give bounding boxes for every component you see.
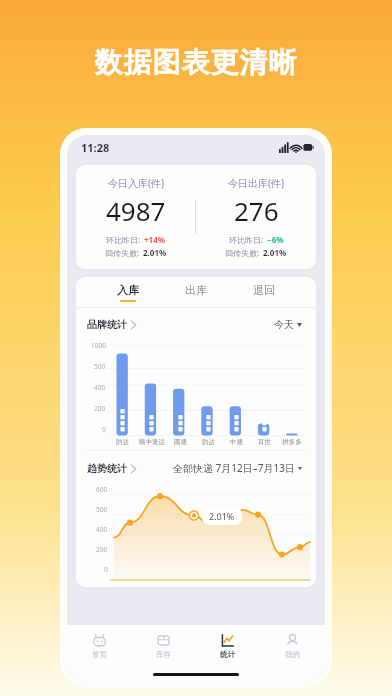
staticText: 500 bbox=[94, 362, 106, 371]
staticText: 11:28 bbox=[81, 140, 110, 155]
staticText: 统计 bbox=[220, 650, 235, 659]
staticText: 出库 bbox=[185, 283, 207, 297]
staticText: 4987 bbox=[106, 193, 166, 228]
staticText: −6% bbox=[267, 234, 284, 245]
staticText: 韵达 bbox=[116, 438, 129, 446]
staticText: 库存 bbox=[156, 650, 171, 659]
staticText: +14% bbox=[144, 234, 165, 245]
button[interactable]: 趋势统计 bbox=[87, 462, 136, 475]
staticText: 全部快递 7月12日–7月13日 bbox=[173, 461, 295, 475]
button[interactable]: 退回 bbox=[247, 280, 281, 305]
staticText: 0 bbox=[102, 425, 106, 434]
button[interactable]: 今天 bbox=[271, 315, 305, 334]
button[interactable]: 入库 bbox=[111, 280, 145, 305]
staticText: 趋势统计 bbox=[87, 462, 127, 475]
staticText: 2.01% bbox=[143, 247, 167, 258]
staticText: 200 bbox=[96, 545, 108, 554]
staticText: 数据图表更清晰 bbox=[0, 45, 392, 80]
staticText: 600 bbox=[96, 485, 108, 494]
button[interactable]: 我的 bbox=[260, 625, 325, 667]
button[interactable]: 库存 bbox=[131, 625, 195, 667]
staticText: 退回 bbox=[253, 283, 275, 297]
staticText: 中通 bbox=[230, 438, 243, 446]
button[interactable]: 出库 bbox=[179, 280, 213, 305]
staticText: 今日出库(件) bbox=[228, 176, 284, 190]
staticText: 品牌统计 bbox=[87, 318, 127, 331]
staticText: 500 bbox=[96, 505, 108, 514]
staticText: 200 bbox=[94, 404, 106, 413]
staticText: 今天 bbox=[274, 318, 294, 331]
staticText: 入库 bbox=[117, 283, 139, 297]
staticText: 2.01% bbox=[209, 510, 235, 522]
button[interactable]: 全部快递 7月12日–7月13日 bbox=[170, 458, 305, 478]
button[interactable]: 统计 bbox=[195, 625, 260, 667]
staticText: 我的 bbox=[285, 650, 300, 659]
button[interactable]: 今日入库(件) bbox=[76, 165, 316, 269]
staticText: 400 bbox=[96, 525, 108, 534]
staticText: 圆通 bbox=[174, 438, 187, 446]
staticText: 2.01% bbox=[263, 247, 287, 258]
staticText: 0 bbox=[104, 565, 108, 574]
staticText: 276 bbox=[234, 193, 279, 228]
staticText: 首页 bbox=[92, 650, 107, 659]
button[interactable]: 品牌统计 bbox=[87, 318, 136, 331]
staticText: 拼多多 bbox=[282, 438, 302, 446]
staticText: 回传失败: bbox=[225, 247, 260, 258]
staticText: 回传失败: bbox=[105, 247, 140, 258]
staticText: 环比昨日: bbox=[106, 234, 141, 245]
button[interactable]: 首页 bbox=[67, 625, 131, 667]
staticText: 1000 bbox=[91, 341, 106, 350]
staticText: 400 bbox=[94, 383, 106, 392]
staticText: 华创应用 · HUACHUANGZS.COM bbox=[0, 659, 392, 682]
staticText: 百世 bbox=[258, 438, 271, 446]
staticText: 顺丰速运 bbox=[139, 438, 165, 446]
staticText: 韵达 bbox=[202, 438, 215, 446]
staticText: 环比昨日: bbox=[229, 234, 264, 245]
staticText: 今日入库(件) bbox=[108, 176, 164, 190]
